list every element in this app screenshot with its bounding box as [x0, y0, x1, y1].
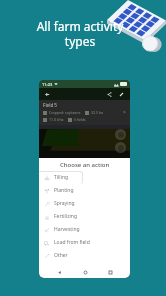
- button[interactable]: Planting: [39, 184, 130, 197]
- button[interactable]: Spraying: [39, 197, 130, 210]
- staticText: Harvesting: [54, 226, 80, 233]
- button[interactable]: Recents: [105, 267, 115, 277]
- staticText: Tilling: [54, 174, 69, 181]
- staticText: Planting: [54, 187, 74, 194]
- button[interactable]: Fertilizing: [39, 210, 130, 223]
- staticText: Load from field: [54, 239, 90, 246]
- staticText: >: [123, 109, 126, 116]
- button[interactable]: Home: [80, 267, 90, 277]
- staticText: Spraying: [54, 200, 75, 207]
- staticText: Cropped: soybeans: [49, 110, 81, 115]
- staticText: Other: [54, 252, 68, 259]
- button[interactable]: Share: [105, 90, 114, 99]
- staticText: Fertilizing: [54, 213, 77, 220]
- staticText: ▲▲: [114, 83, 119, 86]
- staticText: 6 fields: [74, 117, 86, 122]
- staticText: Field 5: [43, 102, 57, 108]
- button[interactable]: Edit: [117, 90, 126, 99]
- staticText: Choose an action: [60, 161, 110, 169]
- button[interactable]: Back: [43, 90, 51, 98]
- staticText: 11.0 t/ha: [49, 117, 64, 122]
- button[interactable]: Harvesting: [39, 223, 130, 236]
- button[interactable]: Map layers: [115, 142, 126, 153]
- button[interactable]: Other: [39, 249, 130, 262]
- button[interactable]: Tilling: [39, 171, 130, 184]
- staticText: All farm activity types: [6, 18, 154, 49]
- button[interactable]: Back: [54, 267, 64, 277]
- staticText: 11:23: [42, 82, 53, 87]
- staticText: 32.5 ha: [91, 110, 103, 115]
- button[interactable]: Load from field: [39, 236, 130, 249]
- button[interactable]: My location: [115, 129, 126, 140]
